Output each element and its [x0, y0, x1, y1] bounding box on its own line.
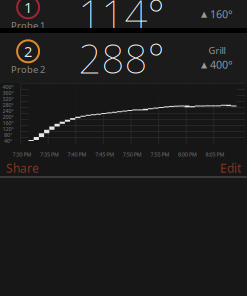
- button[interactable]: 2: [0, 40, 54, 76]
- staticText: Probe 2: [11, 63, 45, 76]
- staticText: Probe 1: [11, 19, 45, 32]
- staticText: 2: [24, 42, 32, 61]
- staticText: 7:30 PM: [12, 151, 31, 158]
- staticText: 8:05 PM: [206, 151, 225, 158]
- button[interactable]: Edit: [220, 157, 247, 180]
- button[interactable]: Share: [0, 157, 39, 180]
- staticText: 320°: [3, 95, 14, 103]
- staticText: 240°: [3, 107, 14, 115]
- staticText: 400°: [210, 58, 233, 72]
- staticText: 200°: [3, 113, 14, 121]
- staticText: 160°: [210, 7, 233, 21]
- staticText: Grill: [208, 44, 225, 57]
- staticText: 400°: [3, 83, 14, 91]
- staticText: 7:50 PM: [123, 151, 142, 158]
- staticText: 8:00 PM: [178, 151, 197, 158]
- staticText: Edit: [220, 160, 241, 176]
- staticText: 288°: [78, 31, 164, 84]
- staticText: 7:45 PM: [95, 151, 114, 158]
- staticText: 280°: [3, 101, 14, 109]
- staticText: 120°: [3, 125, 14, 133]
- staticText: 80°: [4, 131, 12, 139]
- staticText: 360°: [3, 89, 14, 97]
- staticText: Share: [6, 160, 39, 176]
- staticText: ▲: [201, 60, 207, 69]
- staticText: 114°: [78, 0, 164, 40]
- staticText: 160°: [3, 119, 14, 127]
- staticText: 40°: [4, 137, 12, 145]
- staticText: ▲: [201, 9, 207, 19]
- staticText: 1: [24, 0, 32, 17]
- staticText: 7:35 PM: [40, 151, 59, 158]
- button[interactable]: 1: [0, 0, 54, 32]
- staticText: 7:40 PM: [68, 151, 87, 158]
- staticText: 7:55 PM: [150, 151, 169, 158]
